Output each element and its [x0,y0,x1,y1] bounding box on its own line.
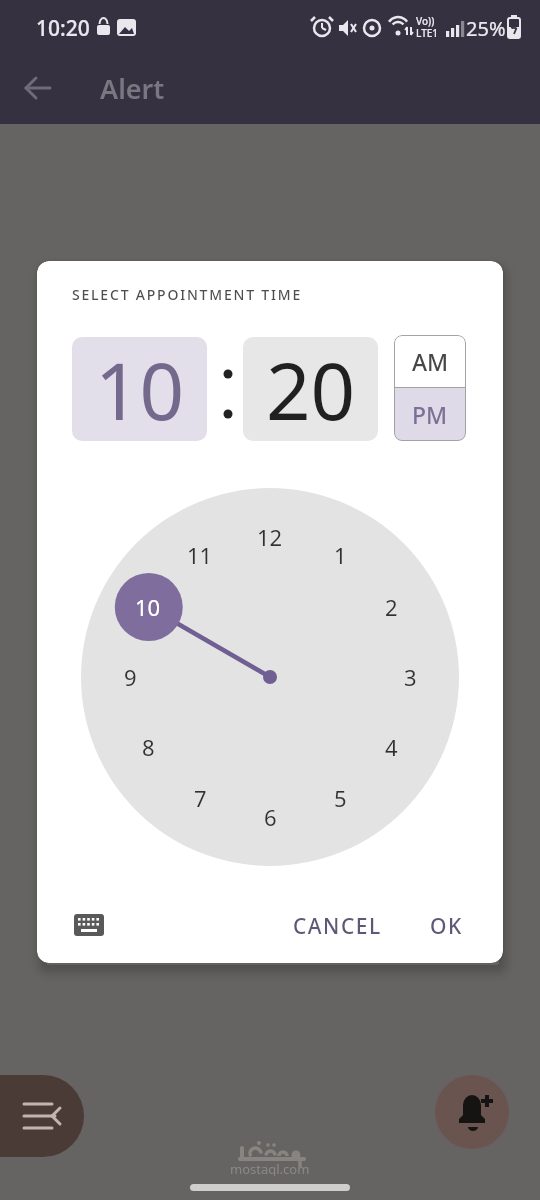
staticText: 25% [466,15,506,42]
staticText: 11 [187,540,213,570]
staticText: OK [430,912,463,941]
staticText: Alert [100,70,165,106]
button[interactable]: 20 [243,337,378,441]
button[interactable]: PM [394,388,466,441]
button[interactable] [16,66,60,110]
staticText: 9 [124,662,137,692]
staticText: 10 [95,337,185,441]
staticText: 12 [257,522,283,552]
button[interactable] [435,1075,509,1149]
staticText: AM [412,346,449,377]
staticText: 10:20 [36,14,90,42]
staticText: 8 [142,732,155,762]
button[interactable] [64,902,112,946]
staticText: mostaql.com [230,1160,310,1176]
staticText: 2 [385,592,398,622]
staticText: 7 [194,783,207,813]
button[interactable] [0,1075,84,1157]
staticText: 3 [404,662,417,692]
staticText: Vo)) [416,14,435,28]
staticText: 10 [135,592,161,622]
button[interactable]: CANCEL [277,906,397,946]
staticText: 5 [334,783,347,813]
staticText: 20 [266,337,356,441]
staticText: 4 [385,732,398,762]
button[interactable]: AM [394,335,466,387]
button[interactable]: OK [411,906,481,946]
button[interactable]: 10 [72,337,207,441]
staticText: 6 [264,802,277,832]
staticText: SELECT APPOINTMENT TIME [72,285,302,304]
staticText: 1 [334,540,347,570]
staticText: PM [412,399,448,430]
staticText: CANCEL [293,912,382,941]
staticText: LTE1 [416,26,439,40]
